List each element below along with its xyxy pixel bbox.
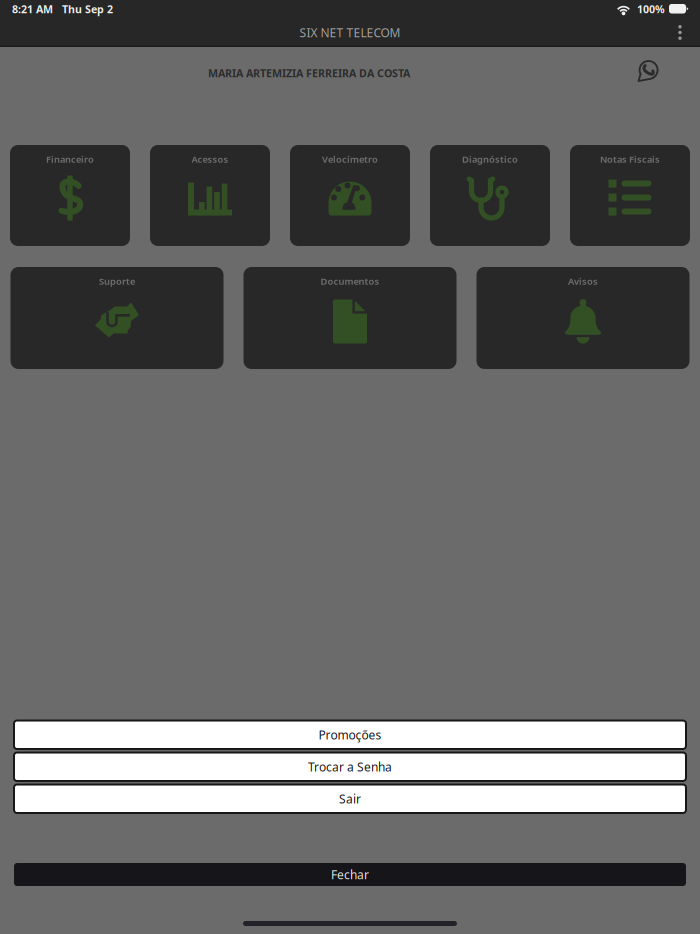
staticText: MARIA ARTEMIZIA FERREIRA DA COSTA: [208, 66, 410, 80]
staticText: Trocar a Senha: [308, 759, 392, 775]
button[interactable]: Sair: [14, 784, 686, 813]
button[interactable]: Promoções: [14, 720, 686, 749]
staticText: Documentos: [320, 275, 379, 287]
button[interactable]: Trocar a Senha: [14, 752, 686, 781]
staticText: Velocímetro: [322, 153, 378, 165]
staticText: Notas Fiscais: [600, 153, 660, 165]
staticText: Thu Sep 2: [62, 2, 113, 16]
staticText: Diagnóstico: [462, 153, 518, 165]
staticText: 100%: [637, 2, 665, 16]
button[interactable]: Documentos: [243, 267, 456, 369]
staticText: Sair: [339, 791, 361, 807]
button[interactable]: Notas Fiscais: [570, 145, 690, 246]
button[interactable]: WhatsApp: [636, 59, 660, 83]
staticText: 8:21 AM: [12, 2, 53, 16]
button[interactable]: Avisos: [476, 267, 689, 369]
staticText: Acessos: [191, 153, 228, 165]
staticText: Promoções: [318, 727, 381, 743]
staticText: SIX NET TELECOM: [299, 24, 400, 40]
staticText: Suporte: [99, 275, 135, 287]
button[interactable]: Fechar: [14, 863, 686, 886]
button[interactable]: Acessos: [150, 145, 270, 246]
staticText: Fechar: [331, 866, 369, 882]
staticText: Avisos: [568, 275, 598, 287]
button[interactable]: Diagnóstico: [430, 145, 550, 246]
button[interactable]: Suporte: [10, 267, 223, 369]
button[interactable]: Financeiro: [10, 145, 130, 246]
button[interactable]: More options: [667, 18, 693, 46]
button[interactable]: Velocímetro: [290, 145, 410, 246]
staticText: Financeiro: [46, 153, 94, 165]
